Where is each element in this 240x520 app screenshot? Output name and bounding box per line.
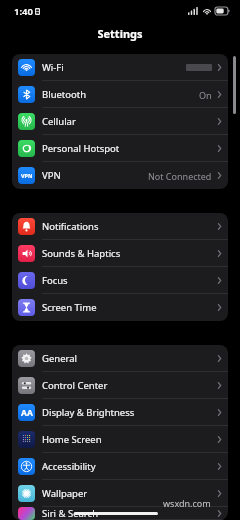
staticText: Home Screen	[42, 433, 102, 446]
staticText: Bluetooth	[42, 88, 87, 101]
staticText: On	[199, 89, 212, 101]
staticText: Wi-Fi	[42, 61, 64, 74]
button[interactable]: Personal Hotspot	[12, 135, 228, 162]
staticText: wsxdn.com	[163, 497, 211, 509]
staticText: Screen Time	[42, 301, 97, 314]
staticText: Sounds & Haptics	[42, 247, 121, 260]
staticText: Wallpaper	[42, 487, 88, 500]
staticText: Focus	[42, 274, 68, 287]
staticText: Notifications	[42, 220, 99, 233]
staticText: VPN	[42, 169, 61, 182]
staticText: VPN	[21, 172, 33, 179]
button[interactable]: Siri & Search	[12, 507, 228, 520]
button[interactable]: Sounds & Haptics	[12, 240, 228, 267]
staticText: Control Center	[42, 379, 108, 392]
button[interactable]: Focus	[12, 267, 228, 294]
staticText: Settings	[97, 26, 143, 41]
staticText: Display & Brightness	[42, 406, 135, 419]
button[interactable]: Notifications	[12, 213, 228, 240]
button[interactable]: Cellular	[12, 108, 228, 135]
button[interactable]: Wi-Fi	[12, 54, 228, 81]
staticText: Accessibility	[42, 460, 96, 473]
button[interactable]: General	[12, 345, 228, 372]
button[interactable]: VPN	[12, 162, 228, 189]
button[interactable]: Accessibility	[12, 453, 228, 480]
button[interactable]: Wallpaper	[12, 480, 228, 507]
staticText: Cellular	[42, 115, 76, 128]
staticText: Not Connected	[148, 170, 212, 182]
staticText: Siri & Search	[42, 507, 99, 520]
button[interactable]: Home Screen	[12, 426, 228, 453]
staticText: Personal Hotspot	[42, 142, 120, 155]
staticText: General	[42, 352, 78, 365]
button[interactable]: Screen Time	[12, 294, 228, 321]
staticText: AA	[21, 407, 33, 419]
button[interactable]: Control Center	[12, 372, 228, 399]
button[interactable]: Bluetooth	[12, 81, 228, 108]
button[interactable]: AA	[12, 399, 228, 426]
staticText: 1:40	[14, 5, 33, 18]
